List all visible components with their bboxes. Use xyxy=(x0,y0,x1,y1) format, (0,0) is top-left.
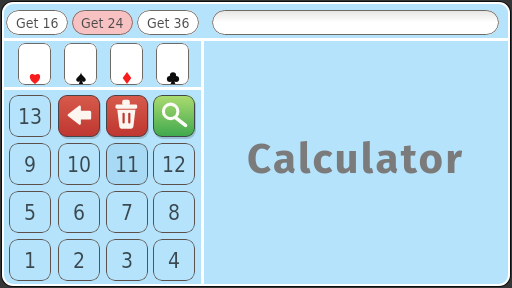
button[interactable]: Backspace xyxy=(58,95,100,137)
staticText: 8 xyxy=(168,201,181,225)
staticText: Calculator xyxy=(247,134,465,180)
button[interactable]: Delete xyxy=(106,95,148,137)
staticText: 9 xyxy=(24,153,37,177)
button[interactable]: 11 xyxy=(106,143,148,185)
staticText: 7 xyxy=(121,201,134,225)
staticText: 5 xyxy=(24,201,37,225)
button[interactable]: 4 xyxy=(153,239,195,281)
staticText: 13 xyxy=(18,105,43,129)
button[interactable]: Get 24 xyxy=(72,10,133,35)
button[interactable]: 6 xyxy=(58,191,100,233)
button[interactable]: Get 36 xyxy=(137,10,199,35)
button[interactable]: 1 xyxy=(9,239,51,281)
button[interactable]: 3 xyxy=(106,239,148,281)
staticText: 2 xyxy=(73,249,86,273)
button[interactable] xyxy=(18,43,51,85)
button[interactable]: Search xyxy=(153,95,195,137)
staticText: 4 xyxy=(168,249,181,273)
button[interactable]: 9 xyxy=(9,143,51,185)
button[interactable]: Get 16 xyxy=(6,10,68,35)
staticText: 3 xyxy=(121,249,134,273)
button[interactable]: 2 xyxy=(58,239,100,281)
button[interactable] xyxy=(156,43,189,85)
staticText: 6 xyxy=(73,201,86,225)
button[interactable] xyxy=(64,43,97,85)
staticText: Get 36 xyxy=(147,15,190,31)
button[interactable] xyxy=(212,10,499,35)
button[interactable]: 12 xyxy=(153,143,195,185)
button[interactable]: 13 xyxy=(9,95,51,137)
button[interactable]: 8 xyxy=(153,191,195,233)
button[interactable]: 7 xyxy=(106,191,148,233)
staticText: 11 xyxy=(115,153,140,177)
button[interactable]: 5 xyxy=(9,191,51,233)
staticText: 1 xyxy=(24,249,37,273)
staticText: 12 xyxy=(162,153,187,177)
staticText: Get 24 xyxy=(81,15,124,31)
button[interactable] xyxy=(110,43,143,85)
button[interactable]: 10 xyxy=(58,143,100,185)
staticText: 10 xyxy=(67,153,92,177)
staticText: Get 16 xyxy=(16,15,59,31)
